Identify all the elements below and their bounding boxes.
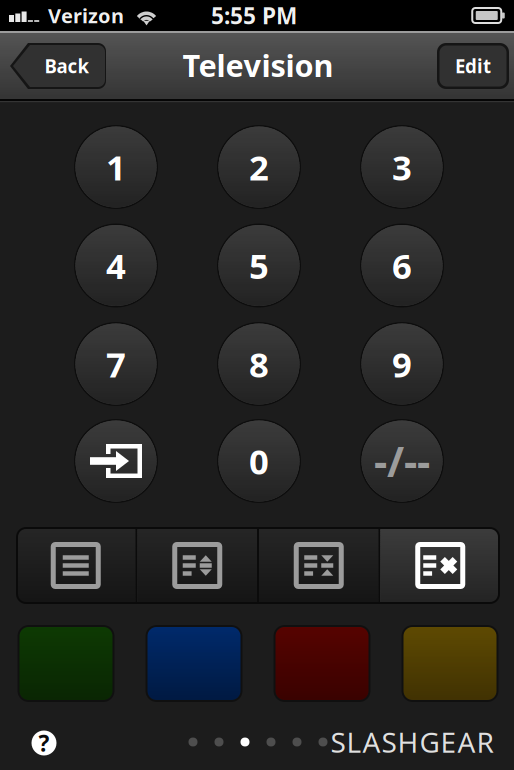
- staticText: 7: [106, 341, 126, 387]
- staticText: Edit: [455, 54, 491, 78]
- button[interactable]: 9: [358, 320, 446, 408]
- button[interactable]: Page up down: [259, 528, 378, 603]
- button[interactable]: Back: [10, 43, 106, 89]
- staticText: Verizon: [48, 2, 124, 29]
- staticText: 5:55 PM: [211, 0, 297, 30]
- button[interactable]: 8: [215, 320, 303, 408]
- staticText: 0: [249, 438, 269, 484]
- staticText: 8: [249, 341, 269, 387]
- button[interactable]: 7: [72, 320, 160, 408]
- button[interactable]: Yellow: [402, 626, 497, 701]
- staticText: ?: [38, 728, 49, 758]
- staticText: 2: [249, 144, 269, 190]
- button[interactable]: 2: [215, 123, 303, 211]
- button[interactable]: 6: [358, 221, 446, 309]
- staticText: -/--: [374, 434, 430, 488]
- staticText: Television: [182, 45, 333, 85]
- button[interactable]: 0: [215, 417, 303, 505]
- staticText: 3: [392, 144, 412, 190]
- button[interactable]: 5: [215, 221, 303, 309]
- button[interactable]: Input: [72, 417, 160, 505]
- button[interactable]: Help: [22, 721, 66, 765]
- button[interactable]: Red: [274, 626, 369, 701]
- button[interactable]: Menu: [16, 528, 135, 603]
- staticText: 1: [106, 144, 126, 190]
- staticText: Back: [44, 54, 89, 78]
- staticText: 4: [106, 242, 126, 288]
- button[interactable]: Dash: [358, 417, 446, 505]
- staticText: 6: [392, 242, 412, 288]
- staticText: 5: [249, 242, 269, 288]
- button[interactable]: 1: [72, 123, 160, 211]
- button[interactable]: Channel up down: [137, 528, 257, 603]
- staticText: SLASHGEAR: [330, 723, 493, 761]
- button[interactable]: Edit: [437, 43, 509, 89]
- button[interactable]: 4: [72, 221, 160, 309]
- button[interactable]: Blue: [146, 626, 241, 701]
- button[interactable]: 3: [358, 123, 446, 211]
- button[interactable]: Exit: [380, 528, 500, 603]
- staticText: 9: [392, 341, 412, 387]
- button[interactable]: Green: [18, 626, 113, 701]
